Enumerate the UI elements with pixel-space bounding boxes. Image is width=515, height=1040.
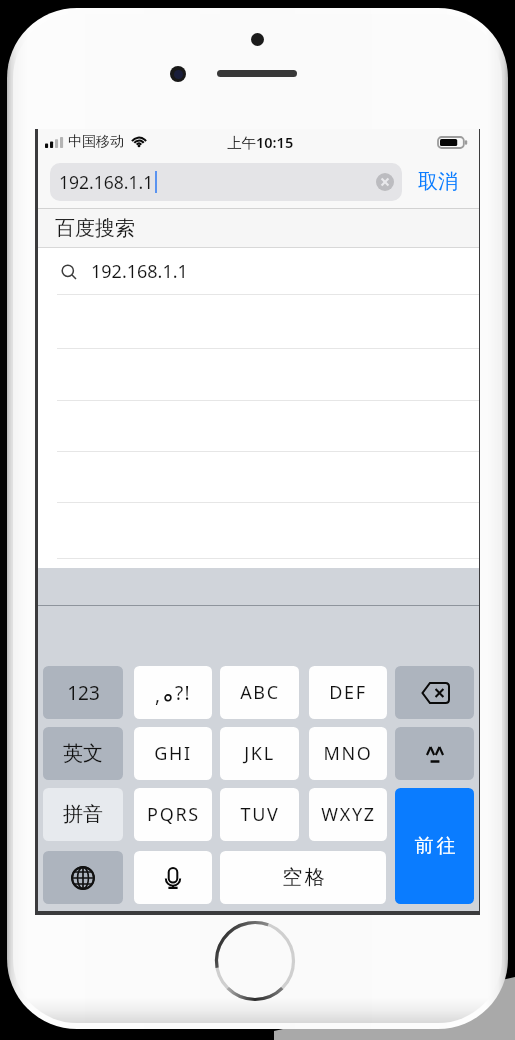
staticText: 123 [67,680,100,706]
button[interactable] [38,503,479,559]
staticText: PQRS [147,802,200,827]
button[interactable]: Clear text [376,173,394,191]
button[interactable]: 前往 [395,788,474,904]
button[interactable]: Emoji [395,727,474,780]
staticText: ?! [175,680,191,706]
other: Switch keyboard [71,866,95,890]
staticText: 空格 [281,865,326,890]
staticText: ABC [240,680,280,705]
button[interactable] [38,452,479,503]
button[interactable] [38,295,479,349]
button[interactable]: 空格 [220,851,386,904]
button[interactable]: Switch keyboard [43,851,123,904]
staticText: 拼音 [63,802,103,827]
staticText: 前往 [413,834,457,858]
button[interactable]: Voice input [134,851,212,904]
other: Backspace [421,683,449,703]
staticText: , [155,682,161,708]
button[interactable]: GHI [134,727,212,780]
button[interactable]: MNO [309,727,387,780]
staticText: 取消 [418,169,458,194]
button[interactable]: DEF [309,666,387,719]
staticText: 百度搜索 [55,216,135,241]
other: Voice input [165,867,181,889]
staticText: GHI [154,741,192,766]
button[interactable]: ABC [220,666,299,719]
button[interactable]: 192.168.1.1 [38,248,479,295]
button[interactable] [38,401,479,452]
button[interactable]: WXYZ [309,788,387,841]
staticText: MNO [323,741,373,766]
button[interactable]: 192.168.1.1 [50,163,402,201]
staticText: 英文 [63,741,103,766]
staticText: DEF [329,680,367,705]
button[interactable]: Backspace [395,666,474,719]
staticText: WXYZ [321,802,376,827]
button[interactable]: JKL [220,727,299,780]
button[interactable]: 123 [43,666,123,719]
button[interactable]: PQRS [134,788,212,841]
other: Emoji [422,744,448,764]
button[interactable] [38,349,479,401]
staticText: JKL [244,741,275,766]
staticText: 上午10:15 [227,132,294,152]
button[interactable]: TUV [220,788,299,841]
staticText: TUV [240,802,280,827]
staticText: 192.168.1.1 [59,170,154,194]
button[interactable]: Home [212,918,298,1004]
button[interactable]: 英文 [43,727,123,780]
staticText: 192.168.1.1 [91,259,188,284]
button[interactable]: 取消 [402,161,469,202]
button[interactable]: , [134,666,212,719]
button[interactable]: 拼音 [43,788,123,841]
staticText: 中国移动 [68,133,124,151]
